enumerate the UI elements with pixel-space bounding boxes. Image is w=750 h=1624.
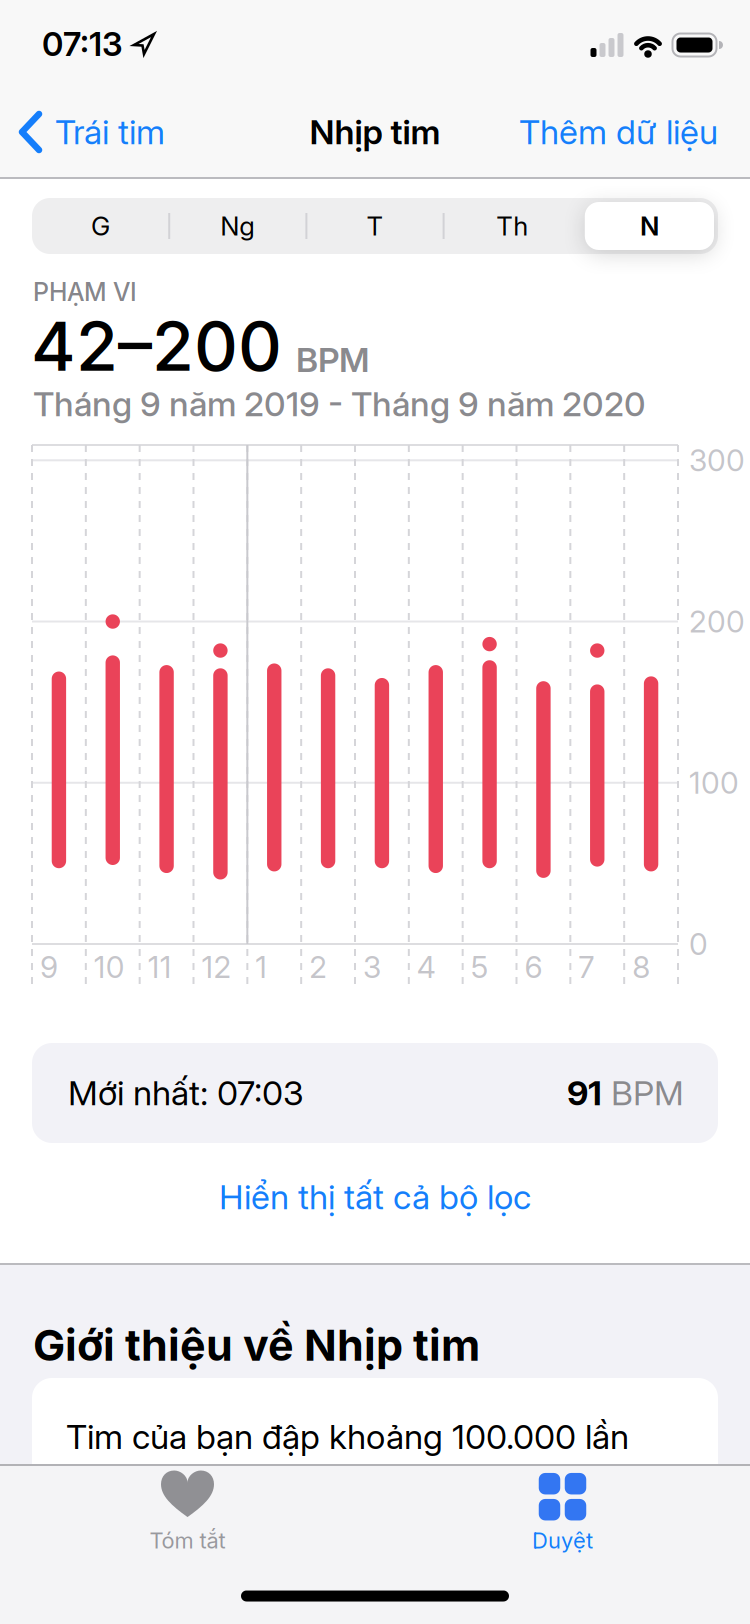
staticText: 10 <box>94 949 125 985</box>
staticText: 91 <box>567 1072 602 1113</box>
staticText: 200 <box>689 603 745 640</box>
button[interactable]: Ng <box>173 202 302 250</box>
staticText: Duyệt <box>532 1527 593 1554</box>
staticText: 5 <box>471 949 489 985</box>
staticText: PHẠM VI <box>33 277 137 307</box>
button[interactable]: T <box>310 202 440 250</box>
button[interactable]: N <box>585 202 714 250</box>
button[interactable]: Duyệt <box>452 1464 672 1584</box>
staticText: BPM <box>296 339 369 380</box>
staticText: 12 <box>201 949 231 985</box>
staticText: Giới thiệu về Nhịp tim <box>33 1319 480 1371</box>
staticText: BPM <box>602 1072 684 1113</box>
staticText: 42–200 <box>31 305 282 387</box>
staticText: 0 <box>689 926 708 962</box>
staticText: N <box>640 210 659 242</box>
staticText: Tháng 9 năm 2019 - Tháng 9 năm 2020 <box>33 383 646 424</box>
button[interactable]: Back <box>19 111 165 153</box>
staticText: 8 <box>632 949 650 985</box>
staticText: Th <box>496 210 528 242</box>
staticText: Thêm dữ liệu <box>519 111 718 152</box>
staticText: 07:13 <box>42 24 123 64</box>
staticText: Hiển thị tất cả bộ lọc <box>219 1176 531 1217</box>
staticText: Mới nhất: 07:03 <box>68 1072 304 1113</box>
button[interactable]: Mới nhất: 07:03 <box>32 1043 718 1143</box>
staticText: Tim của bạn đập khoảng 100.000 lần <box>66 1416 629 1457</box>
staticText: 7 <box>578 949 594 985</box>
staticText: Ng <box>220 210 255 242</box>
staticText: 300 <box>689 442 745 478</box>
staticText: 2 <box>309 949 327 985</box>
staticText: 9 <box>40 949 58 985</box>
staticText: 3 <box>363 949 381 985</box>
button[interactable]: Tóm tắt <box>77 1464 297 1584</box>
button[interactable]: G <box>36 202 165 250</box>
button[interactable]: Th <box>448 202 577 250</box>
staticText: 6 <box>524 949 542 985</box>
staticText: 1 <box>255 949 267 985</box>
staticText: G <box>91 210 110 242</box>
staticText: Tóm tắt <box>149 1527 225 1554</box>
button[interactable]: Thêm dữ liệu <box>519 111 718 152</box>
staticText: Trái tim <box>55 111 165 152</box>
staticText: T <box>366 210 383 242</box>
staticText: Nhịp tim <box>309 111 440 152</box>
staticText: 11 <box>148 949 172 985</box>
staticText: 100 <box>689 765 739 801</box>
button[interactable]: Hiển thị tất cả bộ lọc <box>219 1176 531 1217</box>
staticText: 4 <box>417 949 436 985</box>
